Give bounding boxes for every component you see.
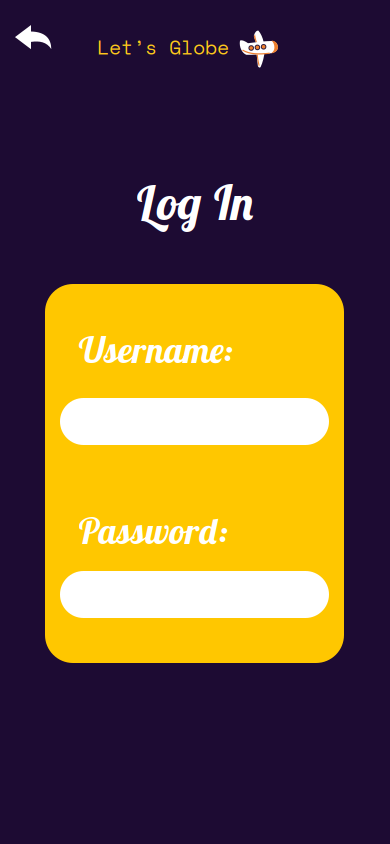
button[interactable]: Password field: [60, 571, 329, 618]
button[interactable]: Username field: [60, 398, 329, 445]
staticText: Let’s Globe: [97, 32, 229, 62]
staticText: Password:: [77, 508, 229, 553]
button[interactable]: Back: [1, 11, 64, 62]
staticText: Log In: [134, 172, 255, 232]
staticText: Username:: [77, 327, 234, 372]
